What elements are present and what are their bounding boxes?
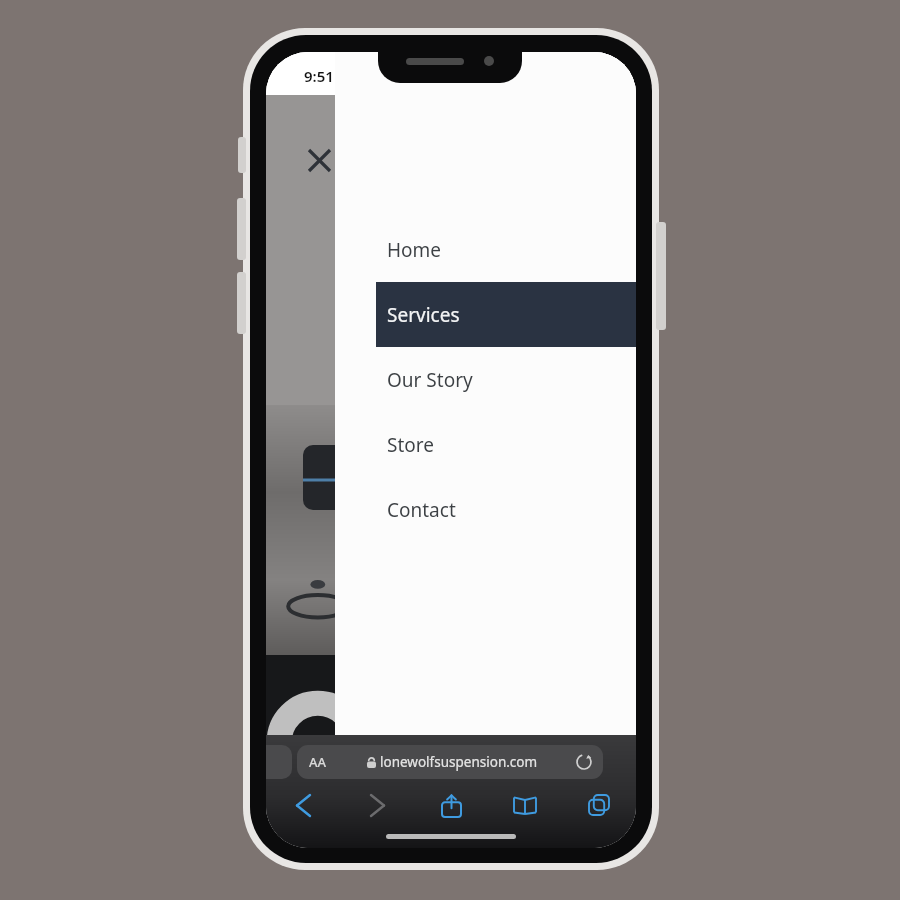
button[interactable]: Our Story: [376, 347, 636, 412]
staticText: Our Story: [387, 367, 473, 393]
other: Power: [656, 222, 666, 330]
staticText: 9:51: [304, 66, 334, 86]
other: Silent switch: [238, 137, 246, 173]
staticText: lonewolfsuspension.com: [380, 753, 538, 771]
button[interactable]: Home: [376, 217, 636, 282]
button[interactable]: Back: [266, 787, 340, 823]
staticText: Services: [387, 302, 460, 328]
staticText: Contact: [387, 497, 456, 523]
staticText: AA: [309, 753, 327, 771]
button[interactable]: Tabs: [562, 787, 636, 823]
staticText: Home: [387, 237, 442, 263]
button[interactable]: Share: [414, 787, 488, 823]
button[interactable]: Contact: [376, 477, 636, 542]
button[interactable]: Close menu: [296, 137, 342, 183]
staticText: Store: [387, 432, 434, 458]
other: Volume up: [237, 198, 246, 260]
button[interactable]: AA: [297, 745, 603, 779]
button[interactable]: Bookmarks: [488, 787, 562, 823]
other: Volume down: [237, 272, 246, 334]
button[interactable]: Forward: [340, 787, 414, 823]
button[interactable]: Previous tab: [266, 745, 292, 779]
button[interactable]: Services: [376, 282, 636, 347]
button[interactable]: Store: [376, 412, 636, 477]
